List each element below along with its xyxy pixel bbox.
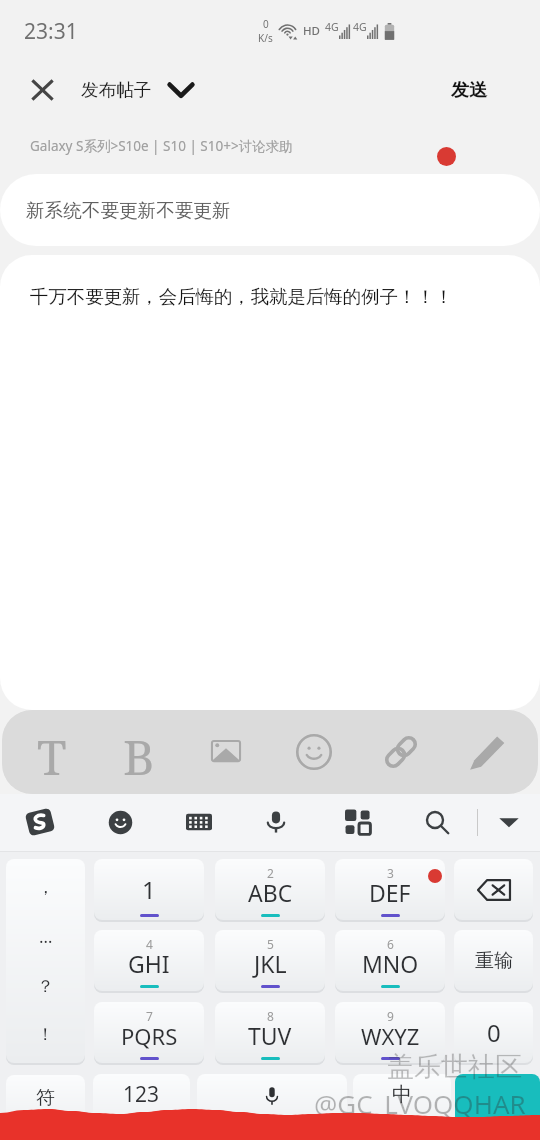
staticText: Galaxy S系列>S10e | S10 | S10+>讨论求助 xyxy=(30,137,293,155)
button[interactable]: T xyxy=(24,724,80,780)
staticText: 重输 xyxy=(475,949,513,973)
staticText: 3 xyxy=(387,865,394,881)
staticText: ？ xyxy=(37,976,54,997)
staticText: ！ xyxy=(37,1024,54,1045)
staticText: 0 xyxy=(263,17,269,31)
staticText: 1 xyxy=(142,873,156,906)
button[interactable]: Keyboard layout xyxy=(176,799,222,845)
staticText: 6 xyxy=(387,936,394,952)
staticText: 2 xyxy=(267,865,274,881)
button[interactable]: 新系统不要更新不要更新 xyxy=(0,174,540,246)
staticText: B xyxy=(123,724,155,780)
staticText: 盖乐世社区 xyxy=(387,1050,522,1084)
staticText: 千万不要更新，会后悔的，我就是后悔的例子！！！ xyxy=(30,285,453,308)
button[interactable]: 8 xyxy=(215,1002,325,1063)
button[interactable]: 123 xyxy=(93,1074,190,1139)
staticText: 4G xyxy=(353,20,367,34)
button[interactable]: 重输 xyxy=(454,930,533,991)
staticText: 5 xyxy=(267,936,274,952)
button[interactable] xyxy=(455,1074,540,1139)
button[interactable]: Search xyxy=(414,799,460,845)
button[interactable]: Insert link xyxy=(373,724,429,780)
staticText: DEF xyxy=(369,877,411,908)
staticText: 发布帖子 xyxy=(81,79,152,101)
staticText: 123 xyxy=(123,1080,160,1109)
button[interactable] xyxy=(197,1074,347,1139)
button[interactable]: 中 xyxy=(353,1074,451,1139)
button[interactable]: 7 xyxy=(94,1002,204,1063)
button[interactable]: 5 xyxy=(215,930,325,991)
button[interactable]: Insert emoji xyxy=(286,724,342,780)
button[interactable]: Draw xyxy=(460,724,516,780)
staticText: K/s xyxy=(258,31,273,45)
staticText: T xyxy=(37,724,67,780)
staticText: GHI xyxy=(128,948,170,979)
staticText: 7 xyxy=(146,1008,153,1024)
staticText: 新系统不要更新不要更新 xyxy=(26,199,231,222)
staticText: PQRS xyxy=(121,1021,178,1051)
button[interactable]: Insert image xyxy=(198,724,254,780)
staticText: 4 xyxy=(146,936,153,952)
button[interactable]: Close xyxy=(9,62,75,118)
button[interactable]: Sogou input xyxy=(17,799,63,845)
staticText: 0 xyxy=(487,1016,501,1049)
staticText: WXYZ xyxy=(361,1021,420,1051)
staticText: TUV xyxy=(248,1020,292,1051)
button[interactable]: Apps xyxy=(335,799,381,845)
button[interactable]: 1 xyxy=(94,859,204,920)
staticText: HD xyxy=(303,23,321,39)
button[interactable]: 9 xyxy=(335,1002,445,1063)
staticText: JKL xyxy=(254,948,287,979)
button[interactable]: 2 xyxy=(215,859,325,920)
button[interactable]: 6 xyxy=(335,930,445,991)
staticText: 符 xyxy=(36,1086,55,1110)
staticText: ABC xyxy=(248,877,293,908)
staticText: 发送 xyxy=(451,79,487,102)
button[interactable]: Emoji xyxy=(97,799,143,845)
staticText: 8 xyxy=(267,1008,274,1024)
staticText: 4G xyxy=(325,20,339,34)
button[interactable]: 3 xyxy=(335,859,445,920)
button[interactable]: Voice input xyxy=(253,799,299,845)
button[interactable]: Hide keyboard xyxy=(486,799,532,845)
staticText: 23:31 xyxy=(24,17,78,46)
button[interactable]: 符 xyxy=(6,1075,85,1139)
button[interactable] xyxy=(454,859,533,920)
button[interactable]: 发布帖子 xyxy=(81,79,203,101)
button[interactable]: 发送 xyxy=(437,69,501,112)
button[interactable]: 0 xyxy=(454,1002,533,1063)
button[interactable]: ， xyxy=(6,859,85,1063)
staticText: 中 xyxy=(392,1082,412,1107)
button[interactable]: 4 xyxy=(94,930,204,991)
button[interactable]: B xyxy=(111,724,167,780)
staticText: … xyxy=(39,925,53,948)
staticText: ， xyxy=(37,877,54,898)
staticText: MNO xyxy=(362,948,419,979)
staticText: 9 xyxy=(387,1008,394,1024)
staticText: @GC_LVOQQHAR xyxy=(314,1086,526,1121)
button[interactable]: 千万不要更新，会后悔的，我就是后悔的例子！！！ xyxy=(0,255,540,710)
